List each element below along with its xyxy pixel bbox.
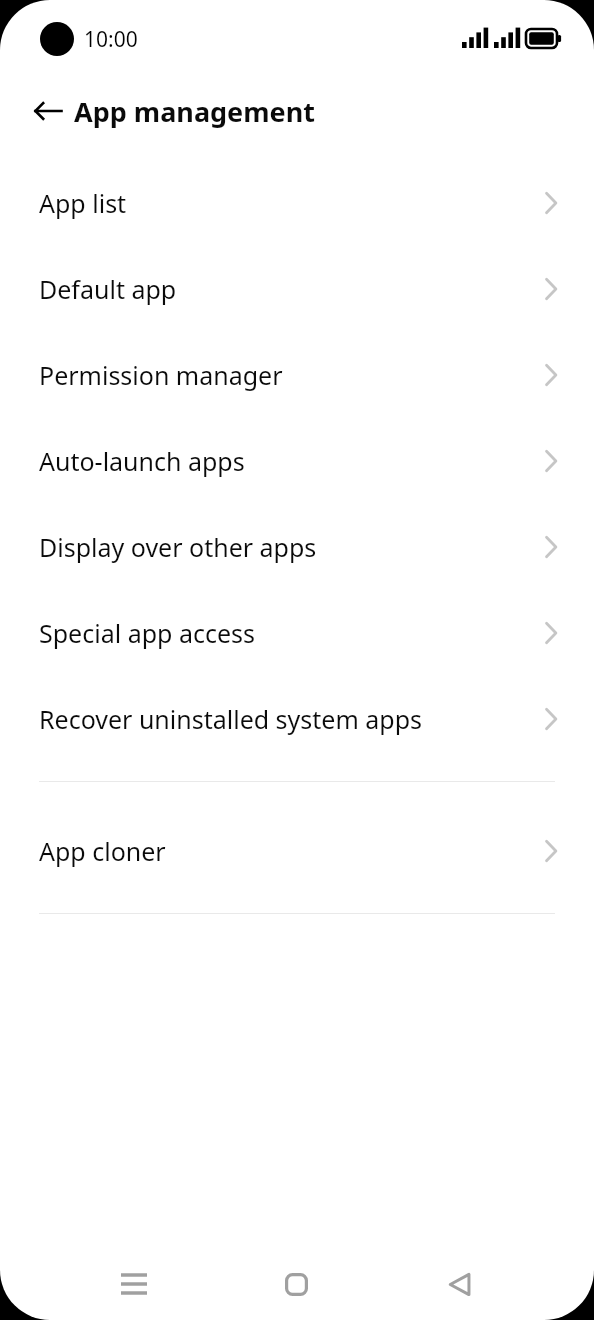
staticText: App list: [39, 186, 544, 220]
staticText: Auto-launch apps: [39, 444, 544, 478]
button[interactable]: Default app: [0, 246, 594, 332]
button[interactable]: Display over other apps: [0, 504, 594, 590]
staticText: App management: [74, 93, 315, 130]
button[interactable]: Home: [268, 1256, 324, 1312]
button[interactable]: App cloner: [0, 808, 594, 894]
staticText: App cloner: [39, 834, 544, 868]
button[interactable]: App list: [0, 160, 594, 246]
button[interactable]: Recover uninstalled system apps: [0, 676, 594, 762]
button[interactable]: Back: [431, 1256, 487, 1312]
button[interactable]: Special app access: [0, 590, 594, 676]
button[interactable]: Recent apps: [106, 1256, 162, 1312]
button[interactable]: Auto-launch apps: [0, 418, 594, 504]
staticText: 10:00: [84, 25, 138, 54]
staticText: Display over other apps: [39, 530, 544, 564]
staticText: Special app access: [39, 616, 544, 650]
staticText: Recover uninstalled system apps: [39, 702, 544, 736]
button[interactable]: Permission manager: [0, 332, 594, 418]
staticText: Permission manager: [39, 358, 544, 392]
staticText: Default app: [39, 272, 544, 306]
button[interactable]: Back: [24, 87, 72, 135]
